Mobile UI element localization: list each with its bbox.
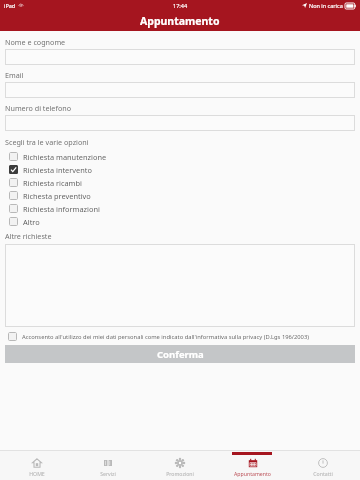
button[interactable] [5,82,355,98]
staticText: Altre richieste [5,231,52,241]
button[interactable]: Contatti [288,451,358,480]
button[interactable]: Servizi [73,451,143,480]
button[interactable]: Richesta preventivo [0,189,360,202]
staticText: Richiesta intervento [23,165,92,175]
staticText: Promozioni [166,470,194,477]
button[interactable]: Conferma [5,345,355,363]
button[interactable]: Appuntamento [217,451,287,480]
staticText: Richesta preventivo [23,191,91,201]
button[interactable] [5,49,355,65]
staticText: Richiesta informazioni [23,204,100,214]
staticText: iPad [4,2,16,9]
button[interactable] [5,115,355,131]
staticText: Appuntamento [140,14,220,28]
staticText: Email [5,70,24,80]
button[interactable]: Richiesta ricambi [0,176,360,189]
button[interactable] [5,244,355,327]
button[interactable]: Richiesta informazioni [0,202,360,215]
staticText: Richiesta manutenzione [23,152,107,162]
staticText: Acconsento all'utilizzo dei miei dati pe… [22,333,309,341]
button[interactable]: Richiesta intervento [0,163,360,176]
staticText: Numero di telefono [5,103,72,113]
staticText: Altro [23,217,40,227]
button[interactable]: Promozioni [145,451,215,480]
button[interactable]: Acconsento all'utilizzo dei miei dati pe… [0,331,360,342]
staticText: Servizi [100,470,116,477]
staticText: HOME [29,470,45,477]
staticText: Richiesta ricambi [23,178,82,188]
staticText: Conferma [157,348,204,361]
staticText: Scegli tra le varie opzioni [5,137,89,147]
button[interactable]: HOME [2,451,72,480]
staticText: Non in carica [309,2,343,9]
staticText: Nome e cognome [5,37,66,47]
button[interactable]: Altro [0,215,360,228]
button[interactable]: Richiesta manutenzione [0,150,360,163]
staticText: Appuntamento [234,470,271,477]
staticText: 17:44 [173,2,188,9]
staticText: Contatti [313,470,333,477]
